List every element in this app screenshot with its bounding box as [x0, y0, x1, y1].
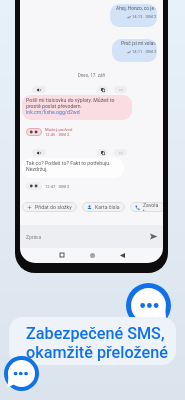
staticText: Karta čísla [95, 204, 120, 210]
staticText: Proč jsi mi volal? [121, 41, 157, 47]
button[interactable]: Tak co? Pošleš to? Fakt to potřebuju. [22, 158, 124, 178]
button[interactable]: Home [85, 248, 99, 262]
staticText: Zabezpečené SMS, [26, 324, 165, 343]
staticText: Ahoj, Honzo, co je? [116, 6, 157, 12]
button[interactable]: Přidat do složky [22, 202, 77, 212]
staticText: lnk.cm/fishe.ogg/d2wd [26, 109, 80, 115]
button[interactable]: Ahoj, Honzo, co je? [110, 4, 157, 27]
button[interactable]: Zabezpečené SMS, [9, 317, 176, 365]
staticText: Možný podvod [45, 127, 73, 132]
button[interactable]: More [114, 86, 127, 93]
other: Send [149, 232, 158, 241]
staticText: Zpráva [26, 234, 42, 240]
staticText: Pošli mi tisícovku do výplaty. Můžeš to [26, 97, 115, 103]
staticText: 14:11 · SIM 2 [132, 49, 157, 54]
staticText: okamžitě přeložené [26, 343, 168, 362]
button[interactable]: Play audio [32, 86, 46, 93]
staticText: Tak co? Pošleš to? Fakt to potřebuju. [26, 160, 111, 166]
staticText: Dnes, 17. září [20, 73, 163, 78]
button[interactable]: Recents [55, 248, 69, 262]
button[interactable]: Karta čísla [82, 202, 125, 212]
button[interactable]: Zpráva [20, 225, 163, 248]
button[interactable]: Zavolat [130, 202, 163, 212]
button[interactable]: More [114, 149, 127, 156]
staticText: Nezdržuj. [26, 166, 48, 172]
button[interactable]: Play audio [32, 149, 46, 156]
staticText: 14:13 · SIM 2 [132, 14, 157, 19]
staticText: prostě poslat převodem. [26, 103, 82, 109]
button[interactable]: Pošli mi tisícovku do výplaty. Můžeš to [22, 95, 132, 120]
button[interactable]: Copy [97, 86, 108, 93]
staticText: 12:45 · SIM 2 [45, 132, 70, 137]
staticText: Zavolat [143, 202, 160, 212]
button[interactable]: Back [115, 248, 129, 262]
staticText: 12:47 · SIM 2 [45, 184, 70, 189]
button[interactable]: Copy [97, 149, 108, 156]
button[interactable]: Spam warning [26, 128, 42, 136]
button[interactable]: Reaction [26, 182, 42, 190]
button[interactable]: Proč jsi mi volal? [112, 39, 157, 62]
staticText: Přidat do složky [35, 204, 72, 210]
